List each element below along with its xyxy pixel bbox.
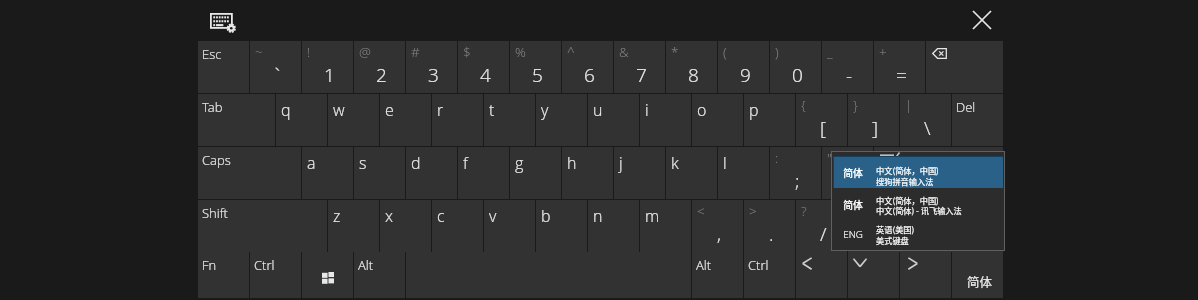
- button[interactable]: h: [562, 147, 613, 199]
- staticText: (: [723, 43, 727, 61]
- button[interactable]: Del: [952, 94, 1003, 146]
- button[interactable]: @: [354, 41, 405, 93]
- button[interactable]: g: [510, 147, 561, 199]
- staticText: ): [775, 43, 779, 61]
- button[interactable]: ENG: [834, 220, 1003, 248]
- staticText: v: [489, 205, 497, 227]
- button[interactable]: z: [328, 200, 379, 252]
- staticText: /: [820, 221, 827, 247]
- button[interactable]: w: [328, 94, 379, 146]
- staticText: :: [775, 149, 779, 167]
- button[interactable]: b: [536, 200, 587, 252]
- button[interactable]: Close: [964, 2, 1000, 38]
- button[interactable]: }: [848, 94, 899, 146]
- button[interactable]: ^: [562, 41, 613, 93]
- button[interactable]: ": [822, 147, 873, 199]
- button[interactable]: (: [718, 41, 769, 93]
- button[interactable]: Shift: [198, 200, 327, 252]
- staticText: ENG: [843, 228, 863, 241]
- button[interactable]: y: [536, 94, 587, 146]
- button[interactable]: n: [588, 200, 639, 252]
- button[interactable]: &: [614, 41, 665, 93]
- staticText: -: [846, 62, 853, 88]
- staticText: Fn: [202, 256, 217, 274]
- staticText: 0: [792, 62, 803, 88]
- button[interactable]: v: [484, 200, 535, 252]
- button[interactable]: Keyboard settings: [204, 5, 238, 35]
- staticText: >: [749, 202, 757, 220]
- button[interactable]: ~: [250, 41, 301, 93]
- button[interactable]: a: [302, 147, 353, 199]
- button[interactable]: Enter: [874, 147, 1003, 199]
- button[interactable]: <: [692, 200, 743, 252]
- button[interactable]: >: [744, 200, 795, 252]
- button[interactable]: |: [900, 94, 951, 146]
- button[interactable]: f: [458, 147, 509, 199]
- staticText: 简体: [843, 198, 863, 212]
- button[interactable]: 简体: [834, 191, 1003, 219]
- button[interactable]: t: [484, 94, 535, 146]
- staticText: *: [671, 43, 679, 61]
- staticText: 简体: [843, 166, 863, 180]
- button[interactable]: Fn: [198, 252, 249, 298]
- button[interactable]: k: [666, 147, 717, 199]
- staticText: 8: [688, 62, 699, 88]
- button[interactable]: m: [640, 200, 691, 252]
- button[interactable]: Windows: [302, 252, 353, 298]
- button[interactable]: Left arrow: [796, 252, 847, 298]
- staticText: 5: [532, 62, 543, 88]
- button[interactable]: ): [770, 41, 821, 93]
- button[interactable]: {: [796, 94, 847, 146]
- staticText: p: [749, 99, 759, 121]
- button[interactable]: _: [822, 41, 873, 93]
- button[interactable]: Shift: [848, 200, 1003, 252]
- staticText: s: [359, 152, 367, 174]
- button[interactable]: s: [354, 147, 405, 199]
- button[interactable]: c: [432, 200, 483, 252]
- button[interactable]: o: [692, 94, 743, 146]
- staticText: h: [567, 152, 577, 174]
- button[interactable]: Ctrl: [744, 252, 795, 298]
- button[interactable]: Tab: [198, 94, 275, 146]
- button[interactable]: p: [744, 94, 795, 146]
- button[interactable]: e: [380, 94, 431, 146]
- button[interactable]: l: [718, 147, 769, 199]
- button[interactable]: r: [432, 94, 483, 146]
- staticText: o: [697, 99, 707, 121]
- staticText: b: [541, 205, 551, 227]
- button[interactable]: i: [640, 94, 691, 146]
- staticText: ': [848, 168, 852, 194]
- staticText: |: [905, 96, 913, 114]
- button[interactable]: Alt: [354, 252, 405, 298]
- button[interactable]: :: [770, 147, 821, 199]
- button[interactable]: 简体: [834, 157, 1003, 188]
- button[interactable]: 简体: [952, 252, 1003, 298]
- button[interactable]: %: [510, 41, 561, 93]
- button[interactable]: Esc: [198, 41, 249, 93]
- button[interactable]: Backspace: [926, 41, 1003, 93]
- staticText: &: [619, 43, 629, 61]
- staticText: m: [645, 205, 660, 227]
- button[interactable]: Caps: [198, 147, 301, 199]
- button[interactable]: d: [406, 147, 457, 199]
- button[interactable]: q: [276, 94, 327, 146]
- button[interactable]: Alt: [692, 252, 743, 298]
- staticText: u: [593, 99, 603, 121]
- staticText: a: [307, 152, 316, 174]
- button[interactable]: !: [302, 41, 353, 93]
- staticText: i: [645, 99, 649, 121]
- button[interactable]: Down arrow: [848, 252, 899, 298]
- button[interactable]: Ctrl: [250, 252, 301, 298]
- staticText: 3: [428, 62, 439, 88]
- button[interactable]: u: [588, 94, 639, 146]
- button[interactable]: j: [614, 147, 665, 199]
- button[interactable]: +: [874, 41, 925, 93]
- button[interactable]: ?: [796, 200, 847, 252]
- staticText: y: [541, 99, 549, 121]
- button[interactable]: #: [406, 41, 457, 93]
- button[interactable]: *: [666, 41, 717, 93]
- button[interactable]: Right arrow: [900, 252, 951, 298]
- button[interactable]: $: [458, 41, 509, 93]
- button[interactable]: x: [380, 200, 431, 252]
